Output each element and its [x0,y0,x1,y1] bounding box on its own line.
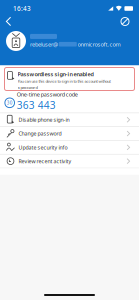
button[interactable]: Settings [120,14,139,28]
button[interactable]: Review recent activity [0,154,139,168]
staticText: 16:43 [13,4,31,13]
staticText: Passwordless sign-in enabled [17,70,93,78]
staticText: rebeluser@ [30,40,58,48]
staticText: Review recent activity [18,158,71,165]
button[interactable]: Change password [0,126,139,140]
staticText: a password [17,85,37,90]
button[interactable]: Update security info [0,140,139,154]
staticText: You can use this device to sign in to th… [17,78,110,84]
staticText: Disable phone sign-in [18,116,69,123]
staticText: Update security info [18,144,67,151]
staticText: 363 443 [17,98,56,112]
button[interactable]: Disable phone sign-in [0,112,139,126]
button[interactable]: Back [0,14,19,29]
staticText: 30 [7,100,13,106]
staticText: Change password [18,130,61,137]
staticText: One-time password code [17,90,78,98]
staticText: onmicrosoft.com [78,40,121,48]
